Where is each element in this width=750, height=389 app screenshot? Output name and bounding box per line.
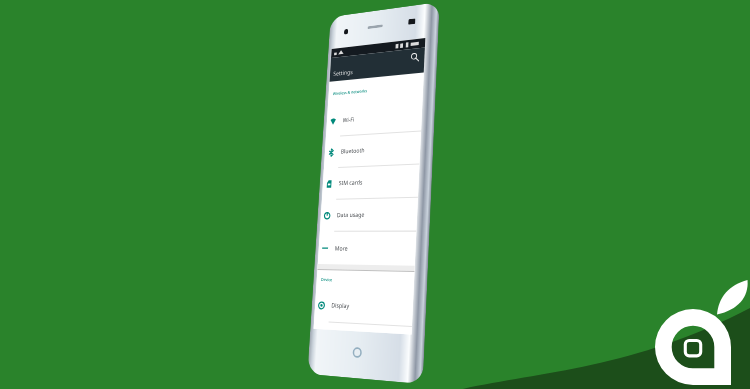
button[interactable]: Search [410, 52, 419, 62]
staticText: Wi-Fi [342, 116, 355, 124]
staticText: SIM cards [339, 178, 363, 187]
staticText: Device [321, 277, 333, 283]
staticText: More [335, 245, 348, 253]
staticText: Data usage [337, 211, 365, 219]
button[interactable]: More [318, 232, 416, 266]
button[interactable]: Wi-Fi [326, 99, 422, 137]
staticText: Settings [333, 67, 353, 77]
staticText: Bluetooth [341, 146, 365, 155]
staticText: Wireless & networks [333, 88, 367, 97]
button[interactable]: Data usage [320, 198, 418, 232]
button[interactable]: Display [314, 289, 413, 327]
staticText: Display [331, 301, 350, 310]
button[interactable]: Bluetooth [324, 131, 421, 168]
button[interactable]: SIM cards [322, 164, 419, 200]
